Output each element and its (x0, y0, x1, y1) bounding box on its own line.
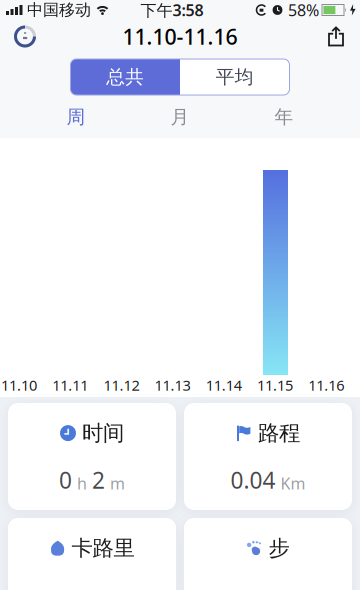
staticText: m (110, 473, 125, 494)
button[interactable]: 年 (232, 105, 336, 128)
button[interactable]: 平均 (180, 59, 289, 95)
button[interactable]: 周 (24, 105, 128, 128)
staticText: 卡路里 (71, 535, 134, 561)
staticText: 中国移动 (27, 0, 91, 20)
staticText: 平均 (216, 65, 254, 88)
staticText: 时间 (82, 420, 124, 446)
staticText: 周 (66, 105, 85, 128)
staticText: 11.16 (308, 375, 344, 395)
staticText: 0.04 (230, 465, 275, 495)
button[interactable]: 总共 (70, 59, 180, 95)
staticText: 步 (268, 535, 289, 561)
staticText: 11.13 (155, 375, 191, 395)
staticText: 58% (288, 0, 319, 21)
staticText: 11.12 (103, 375, 139, 395)
staticText: 年 (274, 105, 293, 128)
button[interactable]: 时间 (8, 403, 176, 510)
button[interactable]: 活动 (0, 25, 36, 47)
staticText: 11.10-11.16 (122, 22, 237, 51)
staticText: 11.10 (1, 375, 37, 395)
staticText: h (77, 473, 87, 494)
staticText: 2 (92, 465, 105, 495)
button[interactable]: 月 (128, 105, 232, 128)
staticText: 下午3:58 (140, 0, 203, 21)
staticText: 月 (170, 105, 189, 128)
staticText: 0 (59, 465, 72, 495)
staticText: 路程 (258, 420, 300, 446)
staticText: 11.11 (52, 375, 88, 395)
button[interactable]: 卡路里 (8, 518, 176, 590)
button[interactable]: Share (328, 26, 360, 46)
staticText: 总共 (106, 65, 144, 88)
staticText: Km (280, 473, 305, 494)
button[interactable]: 路程 (184, 403, 352, 510)
staticText: 11.14 (206, 375, 242, 395)
button[interactable]: 步 (184, 518, 352, 590)
staticText: 11.15 (257, 375, 293, 395)
